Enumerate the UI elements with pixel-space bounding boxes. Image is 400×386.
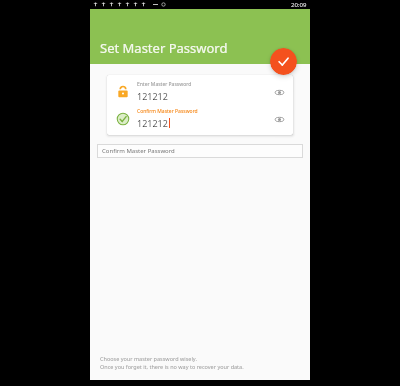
button[interactable]: Enter Master Password [107,78,293,105]
staticText: Confirm Master Password [102,147,175,155]
staticText: 20:09 [291,1,307,9]
staticText: 121212 [137,117,168,129]
staticText: Once you forget it, there is no way to r… [100,363,244,370]
staticText: Choose your master password wisely. [100,355,197,362]
staticText: Set Master Password [100,39,228,57]
staticText: Confirm Master Password [137,108,198,115]
staticText: Enter Master Password [137,81,192,88]
button[interactable]: Show confirm password [272,112,286,126]
staticText: 121212 [137,90,168,102]
button[interactable]: Show password [272,85,286,99]
button[interactable]: Confirm Master Password [97,144,303,158]
button[interactable]: Save master password [270,48,297,75]
button[interactable]: Confirm Master Password [107,105,293,132]
